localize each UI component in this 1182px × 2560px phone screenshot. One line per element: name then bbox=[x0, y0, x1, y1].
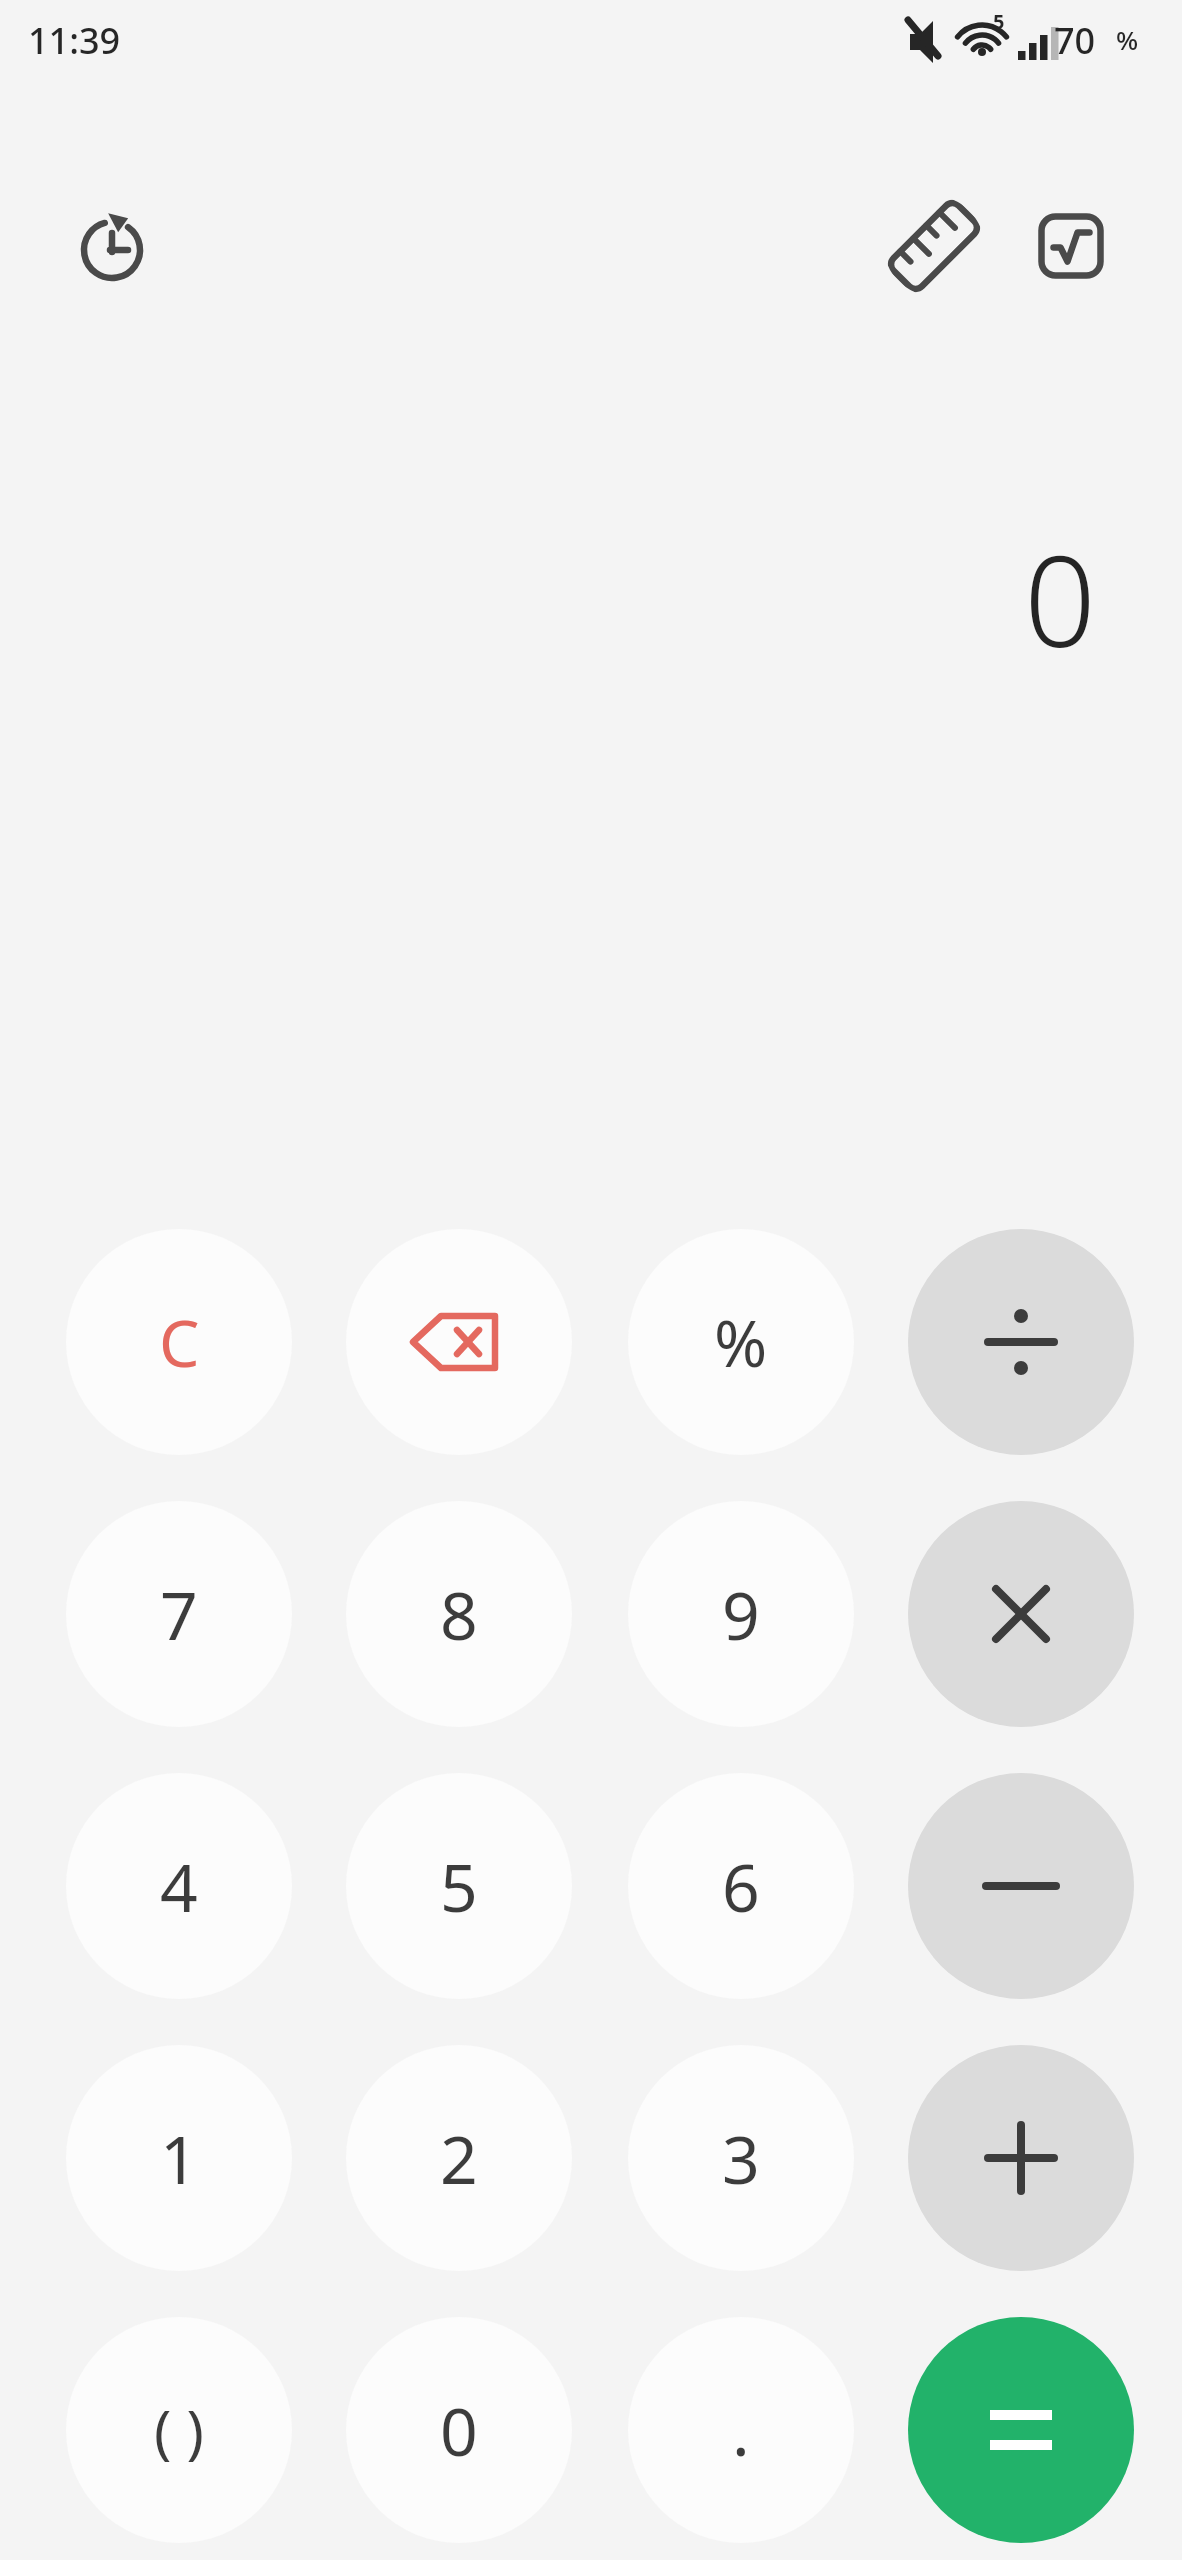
staticText: 70 bbox=[1054, 16, 1096, 65]
button[interactable]: Subtract bbox=[908, 1773, 1134, 1999]
staticText: 0 bbox=[440, 2385, 478, 2475]
staticText: % bbox=[1116, 22, 1139, 57]
staticText: 6 bbox=[722, 1841, 760, 1931]
button[interactable]: Equals bbox=[908, 2317, 1134, 2543]
button[interactable]: ( ) bbox=[66, 2317, 292, 2543]
button[interactable]: Unit converter bbox=[884, 196, 984, 296]
button[interactable]: 8 bbox=[346, 1501, 572, 1727]
staticText: 11:39 bbox=[28, 16, 121, 65]
button[interactable]: 1 bbox=[66, 2045, 292, 2271]
staticText: 7 bbox=[160, 1569, 198, 1659]
staticText: 2 bbox=[440, 2113, 478, 2203]
button[interactable]: 4 bbox=[66, 1773, 292, 1999]
button[interactable]: Scientific calculator bbox=[1021, 196, 1121, 296]
button[interactable]: 2 bbox=[346, 2045, 572, 2271]
staticText: 3 bbox=[722, 2113, 760, 2203]
staticText: % bbox=[714, 1299, 768, 1386]
button[interactable]: Multiply bbox=[908, 1501, 1134, 1727]
button[interactable]: 6 bbox=[628, 1773, 854, 1999]
staticText: ( ) bbox=[154, 2391, 204, 2470]
button[interactable]: 0 bbox=[346, 2317, 572, 2543]
button[interactable]: 5 bbox=[346, 1773, 572, 1999]
button[interactable]: Backspace bbox=[346, 1229, 572, 1455]
button[interactable]: C bbox=[66, 1229, 292, 1455]
button[interactable]: 9 bbox=[628, 1501, 854, 1727]
staticText: 5 bbox=[440, 1841, 478, 1931]
button[interactable]: Divide bbox=[908, 1229, 1134, 1455]
button[interactable]: % bbox=[628, 1229, 854, 1455]
staticText: 0 bbox=[1024, 512, 1096, 684]
staticText: 4 bbox=[160, 1841, 198, 1931]
staticText: 9 bbox=[722, 1569, 760, 1659]
button[interactable]: 7 bbox=[66, 1501, 292, 1727]
button[interactable]: . bbox=[628, 2317, 854, 2543]
button[interactable]: Add bbox=[908, 2045, 1134, 2271]
staticText: C bbox=[159, 1299, 200, 1386]
button[interactable]: 3 bbox=[628, 2045, 854, 2271]
staticText: 8 bbox=[440, 1569, 478, 1659]
button[interactable]: History bbox=[62, 196, 162, 296]
staticText: 5 bbox=[993, 8, 1005, 35]
staticText: . bbox=[732, 2385, 750, 2475]
staticText: 1 bbox=[160, 2113, 198, 2203]
